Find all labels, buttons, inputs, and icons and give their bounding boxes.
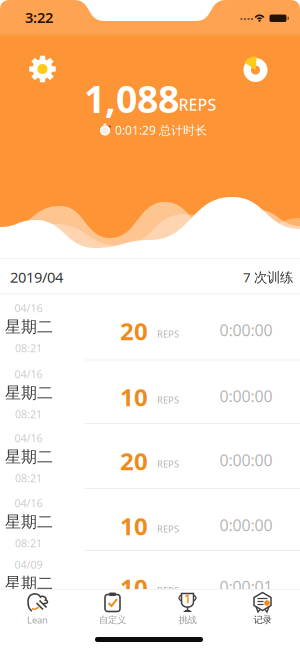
button[interactable]: 04/09	[0, 550, 300, 616]
staticText: 08:21	[15, 471, 42, 485]
staticText: REPS	[157, 523, 179, 535]
staticText: 10	[120, 572, 148, 603]
staticText: 2019/04	[10, 267, 63, 287]
staticText: 0:01:29 总计时长	[115, 122, 207, 138]
staticText: 10	[120, 381, 148, 413]
staticText: 1	[184, 590, 191, 606]
staticText: 星期二	[5, 317, 53, 337]
staticText: 04/16	[14, 301, 42, 315]
staticText: 3:22	[25, 8, 53, 27]
button[interactable]: 04/16	[0, 294, 300, 360]
staticText: 20	[120, 445, 148, 477]
button[interactable]: 04/16	[0, 489, 300, 550]
staticText: 1,088	[84, 74, 179, 123]
staticText: 08:21	[15, 536, 42, 550]
staticText: 挑战	[178, 614, 196, 626]
staticText: 星期二	[5, 383, 53, 403]
staticText: 08:21	[15, 597, 42, 612]
staticText: 04/16	[14, 496, 42, 510]
button[interactable]: 挑战	[150, 589, 225, 633]
staticText: 星期二	[5, 512, 53, 532]
staticText: 04/09	[14, 557, 42, 572]
staticText: 0:00:01	[219, 576, 272, 597]
staticText: 0:00:00	[219, 385, 272, 407]
button[interactable]: 自定义	[75, 589, 150, 633]
staticText: 04/16	[14, 367, 42, 381]
staticText: 08:21	[15, 407, 42, 421]
button[interactable]: Statistics	[238, 53, 272, 87]
staticText: REPS	[157, 458, 179, 470]
staticText: 星期二	[5, 574, 53, 593]
staticText: Lean	[27, 614, 48, 626]
staticText: 10	[120, 510, 148, 542]
button[interactable]: 04/16	[0, 424, 300, 489]
button[interactable]: 记录	[225, 589, 300, 633]
staticText: REPS	[178, 94, 216, 115]
staticText: 记录	[253, 614, 271, 626]
staticText: 08:21	[15, 341, 42, 355]
staticText: REPS	[157, 584, 179, 597]
staticText: 星期二	[5, 447, 53, 467]
staticText: 自定义	[99, 614, 126, 626]
button[interactable]: 04/16	[0, 360, 300, 424]
staticText: 0:00:00	[219, 449, 272, 471]
staticText: 04/16	[14, 431, 42, 445]
staticText: 0:00:00	[219, 319, 272, 341]
staticText: 0:00:00	[219, 514, 272, 536]
staticText: REPS	[157, 394, 179, 406]
staticText: 20	[120, 315, 148, 347]
staticText: REPS	[157, 328, 179, 340]
button[interactable]: Lean	[0, 589, 75, 633]
button[interactable]: Settings	[25, 52, 59, 86]
staticText: 7 次训练	[243, 268, 293, 286]
